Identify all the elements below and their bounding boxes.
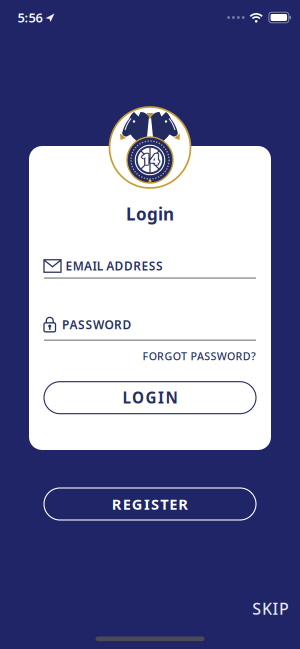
staticText: 14 (140, 148, 158, 170)
staticText: 14 (140, 147, 158, 168)
button[interactable]: LOGIN (44, 382, 256, 414)
staticText: 14 (142, 147, 160, 168)
staticText: 14 (140, 148, 158, 169)
staticText: 14 (142, 148, 160, 169)
staticText: 14 (142, 148, 160, 170)
button[interactable]: FORGOT PASSWORD? (44, 341, 256, 363)
staticText: 14 (141, 148, 159, 169)
staticText: 14 (141, 147, 159, 168)
button[interactable]: PASSWORD (44, 279, 256, 341)
staticText: PASSWORD (62, 316, 131, 333)
staticText: SKIP (252, 598, 289, 619)
staticText: LOGIN (122, 387, 177, 408)
staticText: REGISTER (112, 494, 188, 514)
staticText: 5:56 (17, 9, 42, 26)
button[interactable]: EMAIL ADDRESS (44, 226, 256, 279)
button[interactable]: SKIP (252, 598, 300, 619)
staticText: FORGOT PASSWORD? (142, 349, 256, 363)
staticText: Login (126, 202, 174, 226)
button[interactable]: REGISTER (44, 488, 256, 520)
staticText: 14 (141, 149, 159, 170)
staticText: EMAIL ADDRESS (65, 258, 163, 274)
